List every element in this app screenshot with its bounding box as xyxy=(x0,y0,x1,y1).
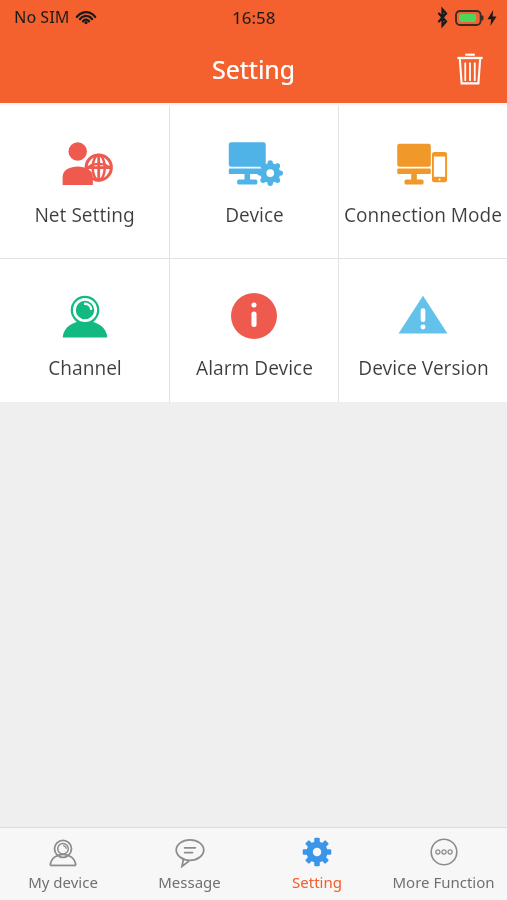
staticText: More Function xyxy=(392,872,495,892)
button[interactable]: Message xyxy=(126,828,253,900)
staticText: No SIM xyxy=(14,6,70,28)
staticText: Channel xyxy=(48,355,122,381)
button[interactable]: Device xyxy=(170,106,338,258)
button[interactable]: My device xyxy=(0,828,126,900)
staticText: Alarm Device xyxy=(196,355,313,381)
staticText: Setting xyxy=(212,52,296,86)
staticText: Connection Mode xyxy=(344,202,502,228)
button[interactable]: Channel xyxy=(0,259,169,402)
button[interactable]: Alarm Device xyxy=(170,259,338,402)
staticText: Setting xyxy=(292,872,342,892)
button[interactable]: More Function xyxy=(380,828,507,900)
button[interactable]: Device Version xyxy=(339,259,507,402)
button[interactable]: Net Setting xyxy=(0,106,169,258)
staticText: Device Version xyxy=(358,355,489,381)
staticText: Message xyxy=(158,872,221,892)
button[interactable]: Connection Mode xyxy=(339,106,507,258)
button[interactable]: Delete xyxy=(447,46,493,92)
staticText: My device xyxy=(28,872,98,892)
button[interactable]: Setting xyxy=(253,828,380,900)
staticText: Device xyxy=(225,202,284,228)
staticText: 16:58 xyxy=(232,6,276,29)
staticText: Net Setting xyxy=(34,202,135,228)
